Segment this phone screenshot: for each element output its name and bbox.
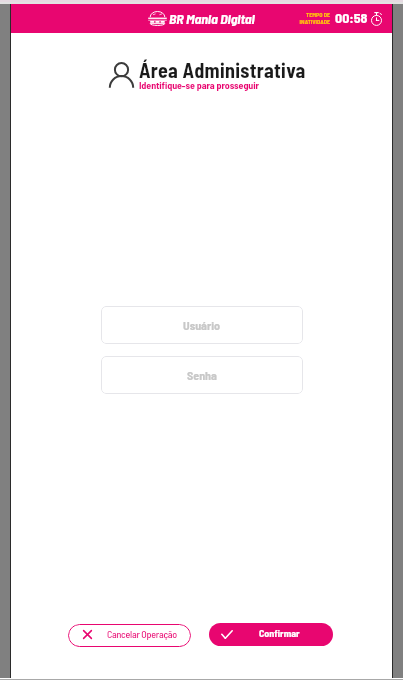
- staticText: BR Mania Digital: [169, 10, 255, 27]
- button[interactable]: Cancelar Operação: [68, 624, 191, 647]
- staticText: Cancelar Operação: [107, 628, 177, 640]
- button[interactable]: Usuário: [101, 306, 303, 344]
- staticText: Área Administrativa: [139, 58, 306, 82]
- staticText: Senha: [187, 368, 217, 382]
- staticText: TEMPO DE: [305, 11, 330, 18]
- other: BR Mania: [148, 11, 167, 26]
- staticText: 00:58: [335, 9, 368, 26]
- button[interactable]: Senha: [101, 356, 303, 394]
- other: Inactivity timer: [371, 12, 382, 26]
- staticText: Confirmar: [259, 627, 300, 639]
- staticText: Usuário: [183, 318, 221, 332]
- staticText: Identifique-se para prosseguir: [139, 79, 259, 91]
- staticText: INATIVIDADE: [299, 18, 330, 25]
- button[interactable]: Confirmar: [209, 623, 333, 646]
